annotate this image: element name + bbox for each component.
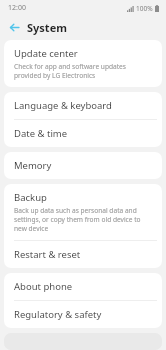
- staticText: Language & keyboard: [14, 99, 112, 112]
- button[interactable]: Backup: [4, 184, 162, 240]
- staticText: 12:00: [8, 3, 26, 13]
- staticText: About phone: [14, 280, 73, 293]
- staticText: Regulatory & safety: [14, 308, 102, 321]
- staticText: System: [27, 20, 67, 35]
- staticText: Restart & reset: [14, 248, 81, 261]
- staticText: 100%: [136, 4, 153, 13]
- staticText: Check for app and software updates provi…: [14, 62, 153, 80]
- button[interactable]: Date & time: [4, 120, 162, 147]
- button[interactable]: Back: [4, 17, 24, 37]
- button[interactable]: Update center: [4, 40, 162, 87]
- button[interactable]: Memory: [4, 152, 162, 179]
- staticText: Back up data such as personal data and s…: [14, 206, 153, 233]
- button[interactable]: Language & keyboard: [4, 92, 162, 119]
- button[interactable]: Restart & reset: [4, 241, 162, 268]
- staticText: Memory: [14, 159, 52, 172]
- staticText: Backup: [14, 191, 47, 204]
- staticText: Date & time: [14, 127, 68, 140]
- button[interactable]: About phone: [4, 273, 162, 300]
- button[interactable]: Regulatory & safety: [4, 301, 162, 328]
- staticText: Update center: [14, 47, 78, 60]
